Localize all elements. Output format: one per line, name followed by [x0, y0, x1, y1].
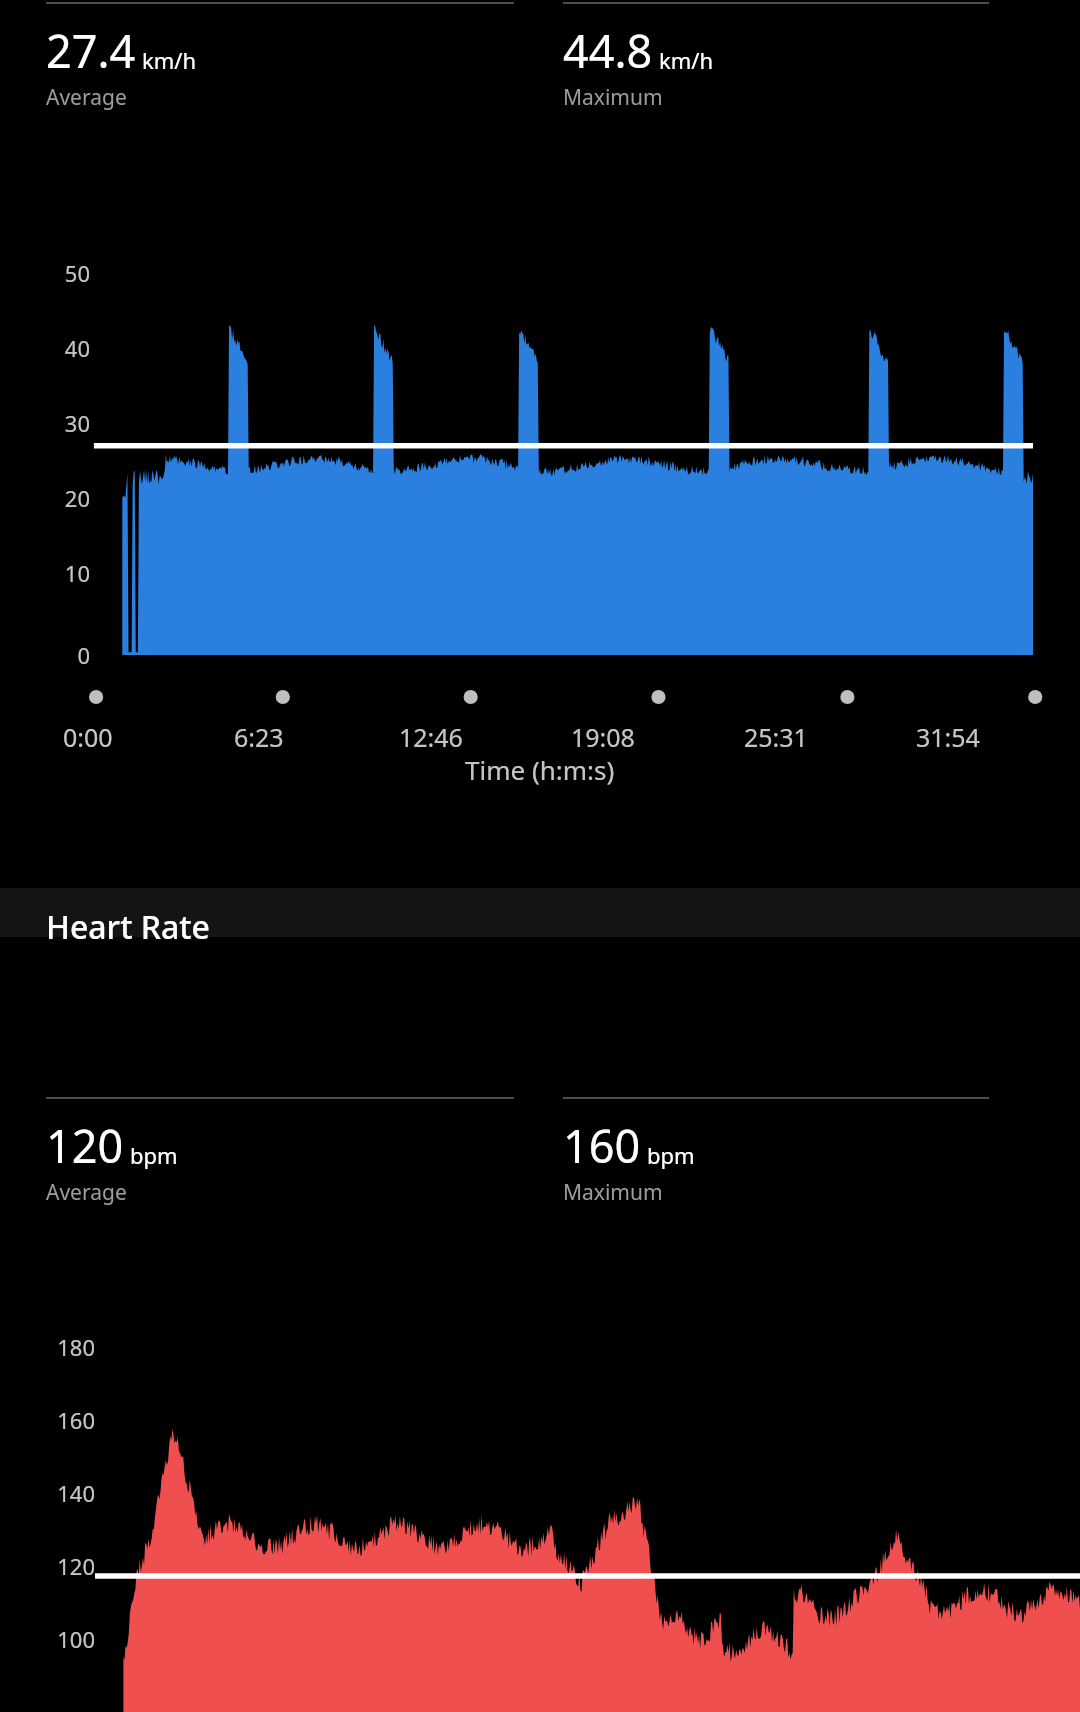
staticText: km/h — [659, 45, 714, 75]
staticText: 120 — [46, 1115, 124, 1176]
staticText: 0 — [77, 640, 90, 670]
staticText: bpm — [647, 1140, 695, 1170]
staticText: 12:46 — [399, 720, 463, 754]
staticText: 140 — [57, 1478, 95, 1508]
staticText: 50 — [64, 258, 90, 288]
button[interactable]: 44.8 — [563, 2, 989, 112]
staticText: 27.4 — [46, 20, 136, 81]
staticText: Average — [46, 1178, 127, 1207]
button[interactable]: 120 — [46, 1097, 514, 1207]
staticText: 31:54 — [916, 720, 980, 754]
staticText: 160 — [57, 1405, 95, 1435]
staticText: Maximum — [563, 1178, 663, 1207]
staticText: 160 — [563, 1115, 641, 1176]
button[interactable]: 160 — [563, 1097, 989, 1207]
button[interactable]: 27.4 — [46, 2, 514, 112]
staticText: Average — [46, 83, 127, 112]
staticText: km/h — [142, 45, 197, 75]
staticText: 25:31 — [744, 720, 808, 754]
staticText: 6:23 — [234, 720, 284, 754]
staticText: 120 — [57, 1551, 95, 1581]
staticText: 0:00 — [63, 720, 113, 754]
staticText: Heart Rate — [46, 905, 210, 949]
staticText: 100 — [57, 1624, 95, 1654]
staticText: 19:08 — [571, 720, 635, 754]
staticText: bpm — [130, 1140, 178, 1170]
staticText: 44.8 — [563, 20, 653, 81]
button[interactable]: Heart Rate — [46, 905, 210, 949]
staticText: 40 — [64, 333, 90, 363]
staticText: Time (h:m:s) — [465, 752, 615, 787]
staticText: 30 — [64, 408, 90, 438]
staticText: 10 — [64, 558, 90, 588]
staticText: Maximum — [563, 83, 663, 112]
staticText: 20 — [64, 483, 90, 513]
staticText: 180 — [57, 1332, 95, 1362]
